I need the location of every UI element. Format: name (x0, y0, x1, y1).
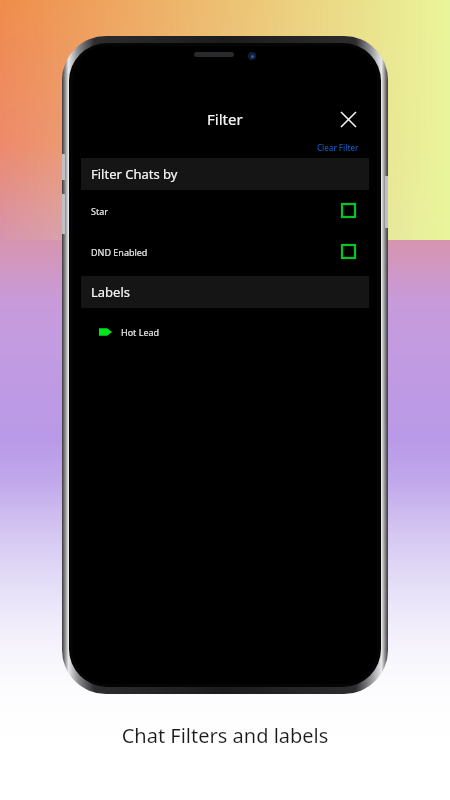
button[interactable]: Clear Filter (315, 140, 361, 155)
staticText: Filter (207, 109, 243, 129)
button[interactable]: Star (73, 190, 377, 231)
button[interactable]: DND Enabled (73, 231, 377, 272)
staticText: Star (91, 205, 108, 217)
staticText: DND Enabled (91, 246, 148, 258)
staticText: Labels (91, 283, 131, 301)
staticText: Chat Filters and labels (0, 722, 450, 749)
staticText: Hot Lead (121, 326, 160, 338)
button[interactable]: Close (333, 104, 363, 134)
button[interactable]: Hot Lead (73, 318, 377, 346)
staticText: Clear Filter (317, 142, 359, 153)
staticText: Filter Chats by (91, 165, 178, 183)
